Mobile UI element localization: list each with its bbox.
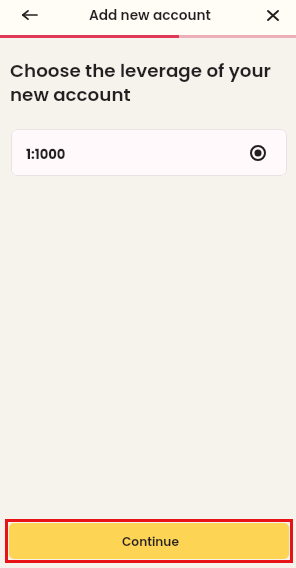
button[interactable]: Close [258,0,288,30]
button[interactable]: Continue [9,523,289,559]
button[interactable]: Back [14,0,44,30]
staticText: Add new account [89,6,211,25]
staticText: Choose the leverage of your new account [10,58,290,108]
button[interactable]: 1:1000 [11,129,287,176]
staticText: Continue [122,533,179,550]
staticText: 1:1000 [26,145,66,163]
